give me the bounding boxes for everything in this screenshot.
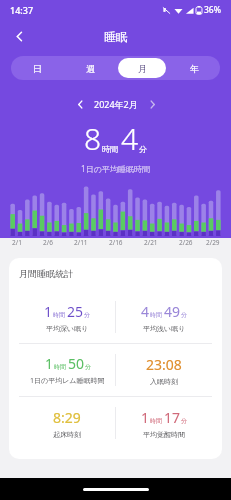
button[interactable]: 1 (19, 344, 115, 396)
staticText: 時間 (102, 144, 118, 154)
staticText: 睡眠 (104, 29, 128, 44)
staticText: 1 (141, 408, 150, 427)
staticText: 週 (86, 63, 95, 74)
staticText: 17 (164, 408, 181, 427)
staticText: 分 (181, 311, 187, 319)
staticText: 14:37 (10, 4, 34, 16)
button[interactable]: 4 (116, 291, 212, 343)
staticText: 4 (141, 302, 150, 321)
staticText: 月間睡眠統計 (19, 268, 73, 279)
staticText: 時間 (150, 417, 162, 425)
staticText: 1 (45, 354, 54, 373)
staticText: 平均浅い眠り (143, 324, 186, 333)
staticText: 2/29 (206, 238, 220, 247)
staticText: 時間 (53, 311, 65, 319)
staticText: 2/16 (109, 238, 123, 247)
button[interactable]: Back (6, 23, 32, 49)
staticText: 時間 (54, 363, 66, 371)
staticText: 2/11 (74, 238, 88, 247)
staticText: 2/1 (12, 238, 22, 247)
staticText: 50 (68, 354, 85, 373)
staticText: 分 (85, 363, 91, 371)
staticText: 平均深い眠り (46, 324, 89, 333)
staticText: 36% (204, 4, 221, 16)
staticText: 1日の平均レム睡眠時間 (30, 376, 105, 386)
staticText: 1日の平均睡眠時間 (0, 163, 231, 174)
staticText: 2024年2月 (94, 98, 138, 110)
button[interactable]: 週 (66, 58, 114, 78)
button[interactable]: Next month (144, 96, 160, 112)
button[interactable]: 8:29 (19, 397, 115, 449)
staticText: 分 (139, 144, 147, 154)
staticText: 2/26 (179, 238, 193, 247)
staticText: 25 (67, 302, 84, 321)
button[interactable]: 年 (170, 58, 218, 78)
staticText: 2/21 (144, 238, 158, 247)
staticText: 分 (181, 417, 187, 425)
staticText: 4 (121, 118, 139, 159)
staticText: 8:29 (53, 408, 81, 427)
staticText: 平均覚醒時間 (143, 430, 185, 439)
button[interactable]: 1 (116, 397, 212, 449)
staticText: 1 (44, 302, 53, 321)
staticText: 年 (190, 63, 199, 74)
button[interactable]: 日 (13, 58, 62, 78)
staticText: 起床時刻 (53, 430, 81, 439)
staticText: 23:08 (146, 355, 182, 374)
staticText: 入眠時刻 (150, 377, 178, 386)
button[interactable]: 1 (19, 291, 115, 343)
staticText: 2/6 (43, 238, 53, 247)
button[interactable]: 月 (118, 58, 166, 78)
staticText: 日 (33, 63, 42, 74)
staticText: 時間 (150, 311, 162, 319)
staticText: 8 (84, 118, 102, 159)
staticText: 分 (84, 311, 90, 319)
button[interactable]: 23:08 (116, 344, 212, 396)
staticText: 月 (138, 63, 147, 74)
staticText: 49 (164, 302, 181, 321)
button[interactable]: Previous month (72, 96, 88, 112)
